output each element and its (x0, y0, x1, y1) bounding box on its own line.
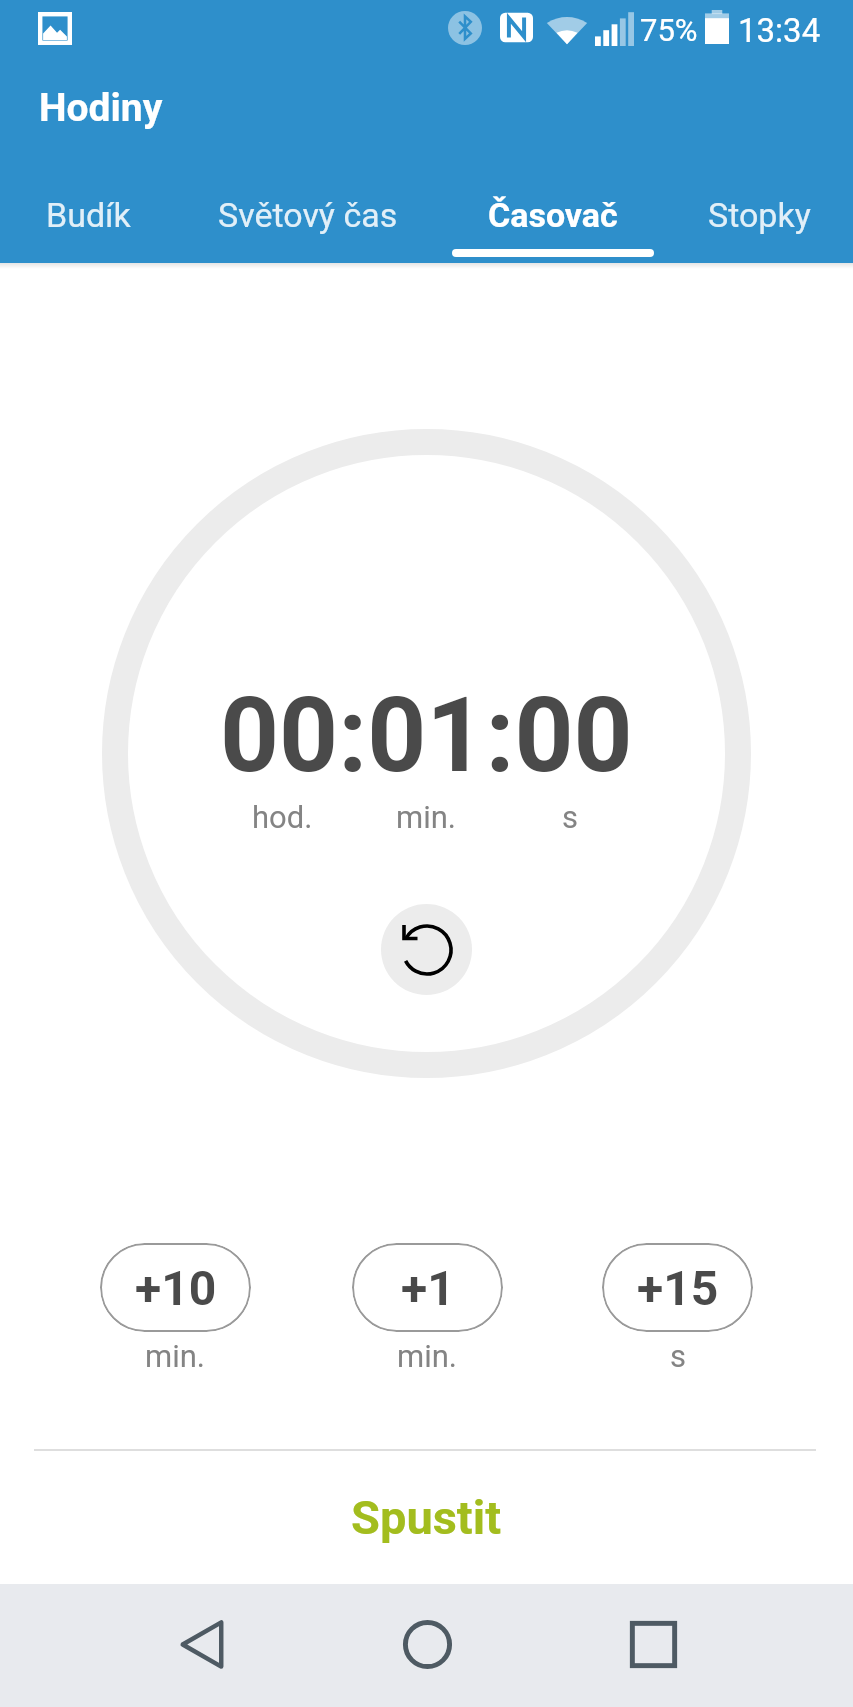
staticText: Budík (46, 195, 131, 235)
staticText: min. (397, 1338, 458, 1374)
staticText: Stopky (708, 195, 811, 235)
staticText: Spustit (351, 1490, 502, 1545)
staticText: s (562, 799, 578, 835)
staticText: Hodiny (39, 85, 163, 131)
staticText: Časovač (488, 195, 618, 235)
button[interactable]: Budík (0, 170, 176, 262)
button[interactable]: Světový čas (176, 170, 440, 262)
button[interactable]: +10 (100, 1243, 251, 1332)
staticText: min. (145, 1338, 206, 1374)
button[interactable]: Reset timer (381, 904, 472, 995)
staticText: Světový čas (218, 195, 398, 235)
button[interactable]: Spustit (0, 1452, 853, 1582)
button[interactable]: Home (365, 1584, 489, 1707)
button[interactable]: Časovač (440, 170, 665, 262)
button[interactable]: Recent apps (591, 1584, 715, 1707)
staticText: +10 (135, 1260, 217, 1316)
staticText: hod. (252, 799, 313, 835)
staticText: +1 (401, 1260, 455, 1316)
staticText: 13:34 (738, 11, 821, 50)
staticText: min. (396, 799, 457, 835)
button[interactable]: +15 (602, 1243, 753, 1332)
staticText: s (670, 1338, 686, 1374)
button[interactable]: +1 (352, 1243, 503, 1332)
staticText: 75% (640, 12, 698, 48)
button[interactable]: Stopky (665, 170, 853, 262)
staticText: 00:01:00 (220, 675, 633, 796)
staticText: +15 (637, 1260, 719, 1316)
button[interactable]: Back (139, 1584, 263, 1707)
